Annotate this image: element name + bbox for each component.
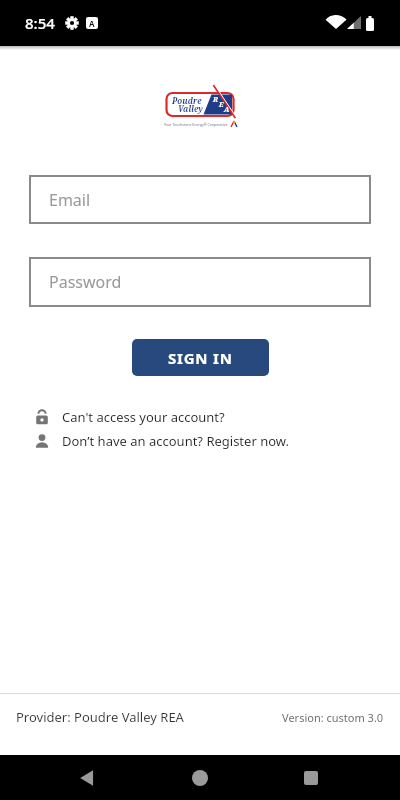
staticText: 8:54 (25, 13, 55, 33)
staticText: Can't access your account? (62, 408, 225, 426)
staticText: Your Touchstone Energy® Cooperative (164, 122, 228, 127)
staticText: Version: custom 3.0 (282, 710, 384, 725)
staticText: A (89, 18, 95, 29)
staticText: Provider: Poudre Valley REA (16, 708, 184, 726)
staticText: E (219, 100, 224, 110)
button[interactable]: Email (29, 175, 371, 224)
staticText: A (224, 105, 230, 115)
staticText: Valley (178, 103, 204, 114)
button[interactable]: Can't access your account? (0, 406, 400, 428)
button[interactable] (297, 764, 325, 792)
staticText: R (213, 95, 218, 105)
button[interactable] (186, 764, 214, 792)
button[interactable]: Don’t have an account? Register now. (0, 430, 400, 452)
staticText: Email (49, 189, 91, 211)
button[interactable]: Password (29, 257, 371, 307)
button[interactable]: SIGN IN (132, 339, 269, 376)
staticText: Password (49, 271, 122, 293)
staticText: SIGN IN (168, 348, 233, 368)
staticText: Poudre (172, 95, 202, 106)
staticText: Don’t have an account? Register now. (62, 432, 289, 450)
button[interactable] (74, 764, 102, 792)
